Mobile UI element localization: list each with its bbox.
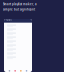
button[interactable]: Tab: [12, 69, 18, 72]
staticText: Smart playlist maker, a: [3, 2, 37, 6]
button[interactable]: Tab: [24, 69, 29, 72]
button[interactable]: Tab: [7, 69, 12, 72]
staticText: simple but significant: [3, 8, 35, 11]
button[interactable]: Tab: [18, 69, 24, 72]
staticText: Playlists: [6, 19, 12, 21]
